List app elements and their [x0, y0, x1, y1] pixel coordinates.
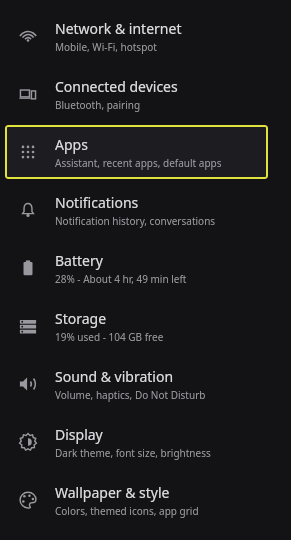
staticText: 28% - About 4 hr, 49 min left	[55, 272, 187, 286]
other: Wallpaper & style	[17, 489, 39, 511]
button[interactable]: Network & internet	[0, 7, 291, 65]
staticText: Bluetooth, pairing	[55, 98, 141, 112]
other: Network & internet	[17, 25, 39, 47]
staticText: Colors, themed icons, app grid	[55, 504, 199, 518]
button[interactable]: Battery	[0, 239, 291, 297]
staticText: Assistant, recent apps, default apps	[55, 156, 222, 170]
button[interactable]: Notifications	[0, 181, 291, 239]
other: Sound & vibration	[17, 373, 39, 395]
other: Display	[17, 431, 39, 453]
button[interactable]: Display	[0, 413, 291, 471]
other: Storage	[17, 315, 39, 337]
button[interactable]: Wallpaper & style	[0, 471, 291, 529]
button[interactable]: Sound & vibration	[0, 355, 291, 413]
staticText: Sound & vibration	[55, 367, 174, 386]
staticText: Volume, haptics, Do Not Disturb	[55, 388, 206, 402]
button[interactable]: Connected devices	[0, 65, 291, 123]
staticText: Dark theme, font size, brightness	[55, 446, 211, 460]
staticText: Battery	[55, 251, 103, 270]
staticText: Notifications	[55, 193, 139, 212]
staticText: Apps	[55, 135, 88, 154]
staticText: Connected devices	[55, 77, 178, 96]
staticText: Notification history, conversations	[55, 214, 216, 228]
staticText: Wallpaper & style	[55, 483, 170, 502]
other: Connected devices	[17, 83, 39, 105]
staticText: Mobile, Wi-Fi, hotspot	[55, 40, 157, 54]
button[interactable]: Storage	[0, 297, 291, 355]
other: Apps	[17, 141, 39, 163]
other: Battery	[17, 257, 39, 279]
staticText: Storage	[55, 309, 107, 328]
staticText: Network & internet	[55, 19, 182, 38]
staticText: 19% used - 104 GB free	[55, 330, 164, 344]
button[interactable]: Apps	[5, 125, 268, 179]
other: Notifications	[17, 199, 39, 221]
staticText: Display	[55, 425, 103, 444]
